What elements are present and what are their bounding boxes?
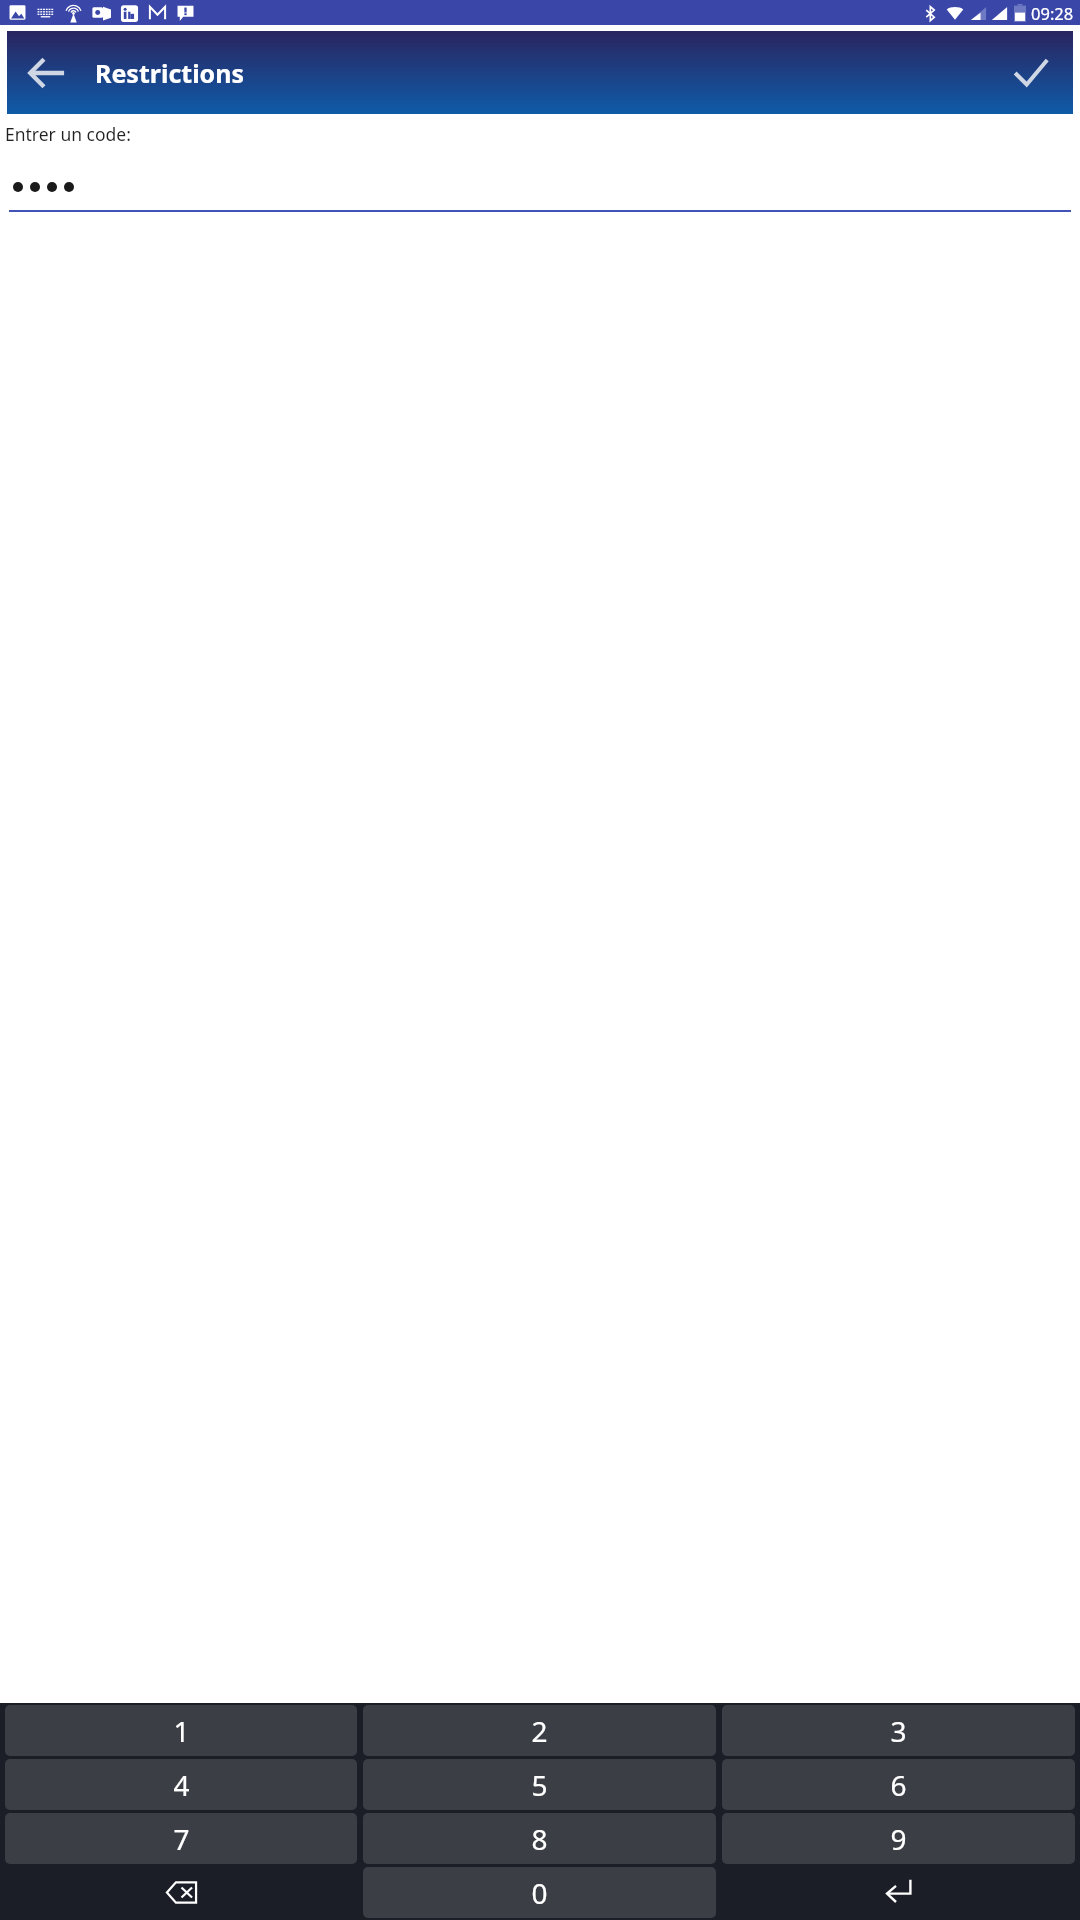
staticText: 09:28 <box>1031 2 1074 24</box>
staticText: Restrictions <box>95 56 245 90</box>
staticText: 5 <box>531 1766 548 1804</box>
button[interactable]: 3 <box>722 1705 1075 1756</box>
button[interactable]: Confirm <box>1003 45 1059 101</box>
staticText: 8 <box>531 1820 548 1858</box>
button[interactable]: Enter <box>719 1867 1078 1918</box>
button[interactable]: Backspace <box>2 1867 360 1918</box>
staticText: 1 <box>173 1712 190 1750</box>
button[interactable] <box>9 162 1071 212</box>
staticText: 3 <box>890 1712 907 1750</box>
staticText: 7 <box>173 1820 190 1858</box>
button[interactable]: Back <box>19 45 75 101</box>
button[interactable]: 6 <box>722 1759 1075 1810</box>
staticText: 9 <box>890 1820 907 1858</box>
button[interactable]: 4 <box>5 1759 357 1810</box>
staticText: 2 <box>531 1712 548 1750</box>
button[interactable]: 1 <box>5 1705 357 1756</box>
button[interactable]: 2 <box>363 1705 716 1756</box>
button[interactable]: 7 <box>5 1813 357 1864</box>
button[interactable]: 9 <box>722 1813 1075 1864</box>
staticText: 0 <box>531 1874 548 1912</box>
staticText: 6 <box>890 1766 907 1804</box>
button[interactable]: 5 <box>363 1759 716 1810</box>
staticText: 4 <box>173 1766 190 1804</box>
button[interactable]: 8 <box>363 1813 716 1864</box>
staticText: Entrer un code: <box>5 122 131 146</box>
button[interactable]: 0 <box>363 1867 716 1918</box>
